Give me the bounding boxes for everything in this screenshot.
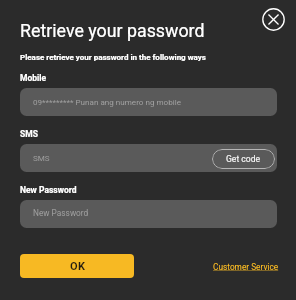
staticText: Get code — [226, 154, 261, 164]
staticText: Customer Service — [213, 262, 279, 272]
staticText: New Password — [33, 208, 89, 218]
button[interactable]: 09********* Punan ang numero ng mobile — [20, 88, 277, 116]
staticText: Retrieve your password — [20, 20, 205, 41]
button[interactable]: OK — [20, 254, 134, 278]
staticText: 09********* Punan ang numero ng mobile — [33, 97, 181, 106]
staticText: Mobile — [20, 73, 47, 83]
staticText: Please retrieve your password in the fol… — [20, 53, 206, 62]
button[interactable]: Get code — [212, 149, 275, 169]
staticText: New Password — [20, 185, 77, 195]
staticText: OK — [70, 260, 86, 273]
staticText: SMS — [33, 153, 50, 162]
button[interactable]: New Password — [20, 200, 277, 228]
staticText: SMS — [20, 129, 38, 139]
button[interactable]: Close — [262, 8, 285, 31]
button[interactable]: Customer Service — [213, 262, 279, 272]
